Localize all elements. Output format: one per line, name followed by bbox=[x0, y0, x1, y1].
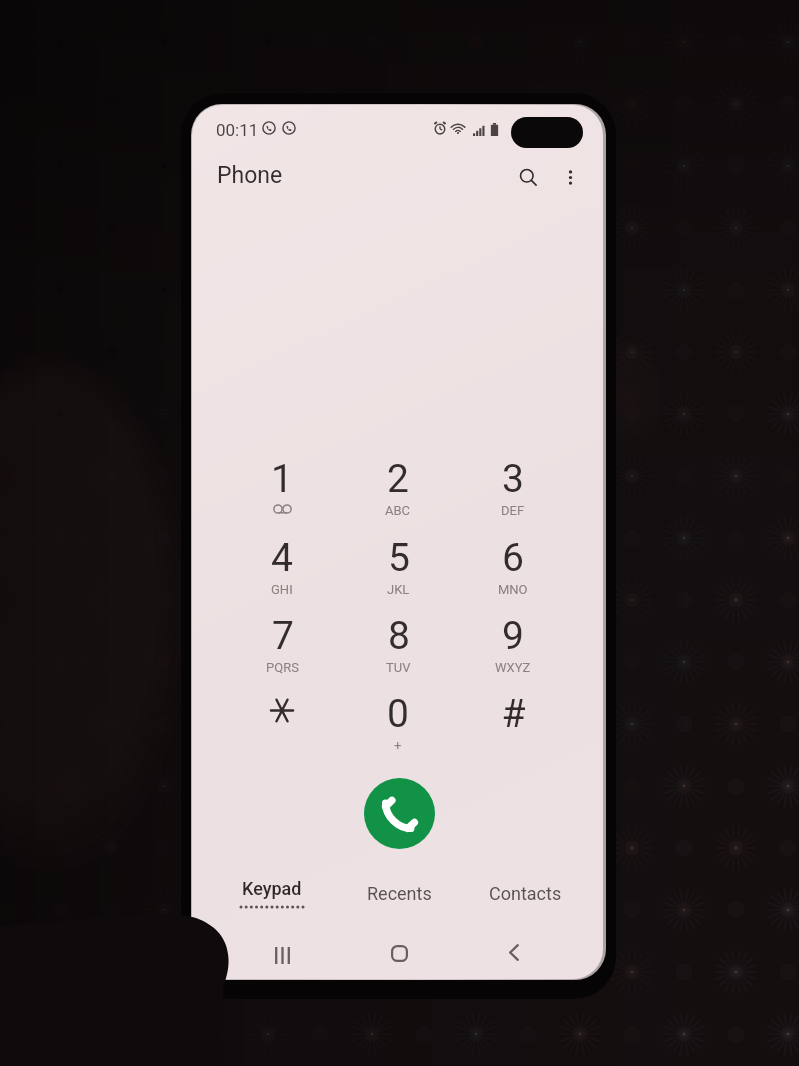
staticText: Keypad bbox=[242, 878, 302, 899]
button[interactable]: Keypad bbox=[210, 871, 334, 915]
staticText: 1 bbox=[271, 456, 293, 502]
staticText: GHI bbox=[271, 582, 293, 597]
button[interactable]: 5 bbox=[340, 535, 456, 614]
button[interactable]: Recents bbox=[337, 871, 461, 915]
button[interactable]: Contacts bbox=[463, 871, 587, 915]
staticText: 00:11 bbox=[216, 120, 259, 140]
button[interactable]: Search bbox=[506, 155, 550, 199]
button[interactable]: Recent apps bbox=[248, 933, 316, 977]
button[interactable]: 9 bbox=[455, 613, 571, 692]
button[interactable]: 4 bbox=[224, 535, 340, 614]
staticText: DEF bbox=[501, 503, 525, 518]
staticText: WXYZ bbox=[495, 660, 531, 675]
staticText: ABC bbox=[385, 503, 411, 518]
staticText: 5 bbox=[388, 535, 410, 581]
button[interactable]: 0 bbox=[340, 691, 456, 770]
staticText: 4 bbox=[271, 535, 293, 581]
button[interactable]: 8 bbox=[340, 613, 456, 692]
staticText: # bbox=[501, 691, 526, 737]
button[interactable]: 6 bbox=[455, 535, 571, 614]
staticText: + bbox=[394, 738, 402, 753]
button[interactable]: 7 bbox=[224, 613, 340, 692]
staticText: JKL bbox=[387, 582, 410, 597]
button[interactable]: 1 bbox=[224, 456, 340, 535]
staticText: Phone bbox=[217, 162, 283, 189]
staticText: Recents bbox=[367, 883, 432, 904]
staticText: 9 bbox=[502, 613, 524, 659]
staticText: TUV bbox=[386, 660, 411, 675]
button[interactable]: 2 bbox=[340, 456, 456, 535]
staticText: 8 bbox=[388, 613, 410, 659]
staticText: Contacts bbox=[489, 883, 562, 904]
button[interactable]: 3 bbox=[455, 456, 571, 535]
staticText: 2 bbox=[387, 456, 409, 502]
staticText: 7 bbox=[272, 613, 294, 659]
staticText: 6 bbox=[502, 535, 524, 581]
staticText: PQRS bbox=[266, 660, 299, 675]
button[interactable]: Call bbox=[364, 778, 435, 849]
button[interactable]: # bbox=[455, 691, 571, 770]
staticText: MNO bbox=[498, 582, 528, 597]
button[interactable] bbox=[224, 691, 340, 770]
staticText: 0 bbox=[387, 691, 409, 737]
staticText: 3 bbox=[502, 456, 524, 502]
button[interactable]: Back bbox=[480, 930, 548, 974]
button[interactable]: More options bbox=[548, 155, 592, 199]
button[interactable]: Home bbox=[365, 931, 433, 975]
